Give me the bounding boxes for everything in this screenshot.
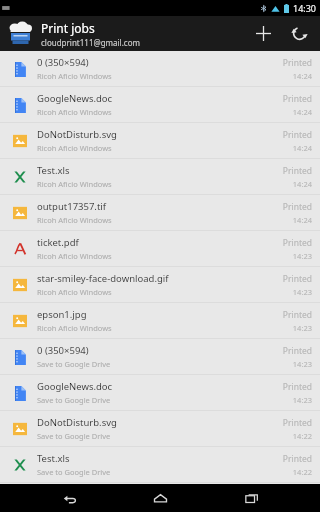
staticText: 14:23 [292, 287, 312, 297]
staticText: Printed [282, 273, 312, 285]
button[interactable]: Recent apps [229, 484, 275, 512]
button[interactable]: Home [137, 484, 183, 512]
staticText: cloudprint111@gmail.com [41, 37, 140, 48]
staticText: Save to Google Drive [37, 431, 111, 441]
staticText: Test.xls [37, 452, 70, 465]
staticText: output17357.tif [37, 200, 107, 213]
staticText: 14:23 [292, 395, 312, 405]
staticText: Printed [282, 57, 312, 69]
staticText: Test.xls [37, 164, 70, 177]
staticText: 14:23 [292, 251, 312, 261]
button[interactable]: GoogleNews.doc [0, 375, 320, 410]
staticText: 14:24 [292, 143, 312, 153]
button[interactable]: Test.xls [0, 159, 320, 194]
staticText: DoNotDisturb.svg [37, 128, 117, 141]
button[interactable]: 0 (350×594) [0, 339, 320, 374]
staticText: Printed [282, 345, 312, 357]
staticText: Save to Google Drive [37, 395, 111, 405]
staticText: 14:24 [292, 71, 312, 81]
staticText: Printed [282, 237, 312, 249]
staticText: GoogleNews.doc [37, 380, 113, 393]
staticText: DoNotDisturb.svg [37, 416, 117, 429]
staticText: Ricoh Aficio Windows [37, 71, 112, 81]
staticText: Ricoh Aficio Windows [37, 107, 112, 117]
staticText: Printed [282, 381, 312, 393]
staticText: Printed [282, 453, 312, 465]
staticText: 14:23 [292, 323, 312, 333]
staticText: GoogleNews.doc [37, 92, 113, 105]
button[interactable]: Back [46, 484, 92, 512]
staticText: ticket.pdf [37, 236, 79, 249]
button[interactable]: GoogleNews.doc [0, 87, 320, 122]
staticText: Printed [282, 309, 312, 321]
staticText: 0 (350×594) [37, 56, 89, 69]
staticText: Print jobs [41, 20, 95, 36]
staticText: Printed [282, 201, 312, 213]
staticText: Printed [282, 165, 312, 177]
button[interactable]: output17357.tif [0, 195, 320, 230]
button[interactable]: ticket.pdf [0, 231, 320, 266]
button[interactable]: Refresh [282, 16, 316, 51]
button[interactable]: star-smiley-face-download.gif [0, 267, 320, 302]
staticText: 14:30 [293, 2, 317, 14]
staticText: Save to Google Drive [37, 467, 111, 477]
staticText: Ricoh Aficio Windows [37, 179, 112, 189]
button[interactable]: epson1.jpg [0, 303, 320, 338]
staticText: Save to Google Drive [37, 359, 111, 369]
staticText: Printed [282, 417, 312, 429]
staticText: Ricoh Aficio Windows [37, 143, 112, 153]
staticText: epson1.jpg [37, 308, 87, 321]
staticText: 14:24 [292, 179, 312, 189]
staticText: Ricoh Aficio Windows [37, 215, 112, 225]
button[interactable]: Cloud Print [7, 20, 34, 47]
staticText: star-smiley-face-download.gif [37, 272, 169, 285]
staticText: Ricoh Aficio Windows [37, 323, 112, 333]
button[interactable]: DoNotDisturb.svg [0, 123, 320, 158]
staticText: 14:22 [292, 431, 312, 441]
button[interactable]: Add [244, 16, 282, 51]
button[interactable]: Test.xls [0, 447, 320, 482]
button[interactable]: 0 (350×594) [0, 51, 320, 86]
staticText: 14:24 [292, 107, 312, 117]
staticText: 0 (350×594) [37, 344, 89, 357]
staticText: 14:24 [292, 215, 312, 225]
button[interactable]: DoNotDisturb.svg [0, 411, 320, 446]
staticText: Ricoh Aficio Windows [37, 251, 112, 261]
staticText: Ricoh Aficio Windows [37, 287, 112, 297]
staticText: 14:23 [292, 359, 312, 369]
staticText: Printed [282, 129, 312, 141]
staticText: 14:22 [292, 467, 312, 477]
staticText: Printed [282, 93, 312, 105]
